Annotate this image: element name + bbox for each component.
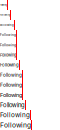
staticText: Following xyxy=(0,82,22,88)
staticText: Following xyxy=(0,4,7,6)
staticText: Following xyxy=(0,14,10,16)
staticText: Following xyxy=(0,101,25,109)
staticText: Following xyxy=(0,53,16,57)
staticText: Following xyxy=(0,33,16,37)
staticText: Following xyxy=(0,72,22,78)
staticText: Following xyxy=(0,43,16,47)
staticText: Following xyxy=(0,62,19,68)
staticText: Following xyxy=(0,23,14,27)
staticText: Following xyxy=(0,121,31,129)
staticText: Following xyxy=(0,92,22,98)
staticText: Following xyxy=(0,111,30,119)
